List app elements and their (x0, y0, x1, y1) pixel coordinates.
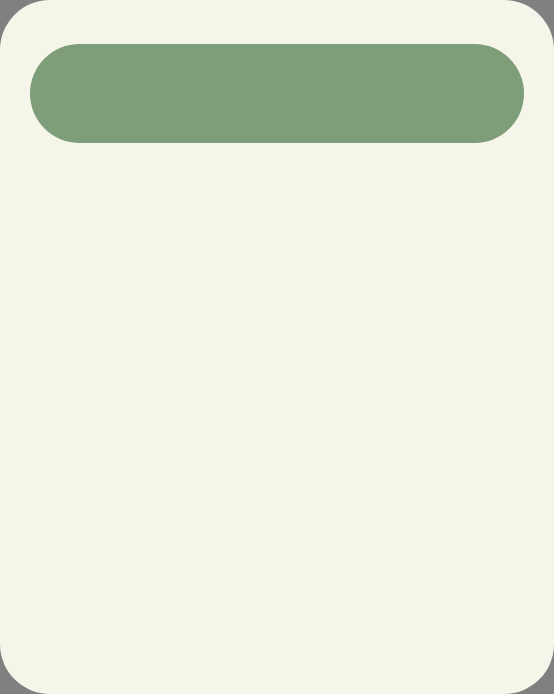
button[interactable]: Primary action bar (30, 44, 524, 143)
